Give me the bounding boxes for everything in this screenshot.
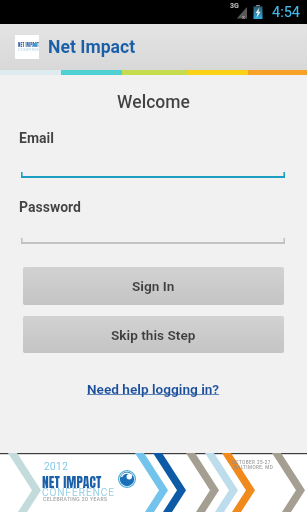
staticText: Need help logging in? <box>87 381 220 397</box>
staticText: Email <box>19 130 54 146</box>
staticText: CONFERENCE <box>42 487 116 499</box>
staticText: 4:54 <box>272 4 300 21</box>
staticText: CELEBRATING 20 YEARS <box>43 496 108 502</box>
button[interactable]: Skip this Step <box>23 316 284 353</box>
staticText: NET IMPACT <box>18 42 39 49</box>
staticText: 3G <box>230 2 239 10</box>
staticText: NET IMPACT <box>42 472 102 492</box>
staticText: Skip this Step <box>111 327 196 343</box>
staticText: Sign In <box>132 278 175 294</box>
staticText: 2012 <box>44 461 69 473</box>
staticText: BALTIMORE, MD <box>234 465 274 470</box>
staticText: CONFERENCE <box>18 47 39 52</box>
staticText: Welcome <box>0 92 307 113</box>
staticText: Net Impact <box>48 37 136 58</box>
button[interactable]: Sign In <box>23 267 284 305</box>
staticText: x <box>242 13 245 20</box>
staticText: OCTOBER 25-27 <box>232 460 271 465</box>
staticText: Password <box>19 199 81 215</box>
button[interactable]: Need help logging in? <box>79 377 228 401</box>
